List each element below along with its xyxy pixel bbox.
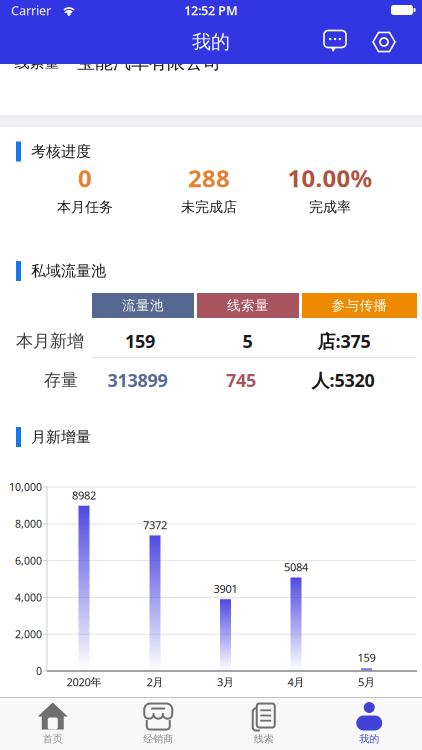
staticText: 3901 bbox=[213, 581, 237, 596]
staticText: 我的 bbox=[359, 733, 379, 745]
staticText: 12:52 PM bbox=[184, 2, 238, 19]
staticText: 未完成店 bbox=[181, 198, 237, 216]
staticText: 159 bbox=[357, 650, 375, 665]
staticText: 本月任务 bbox=[57, 198, 113, 216]
staticText: 我的 bbox=[192, 30, 230, 54]
staticText: 288 bbox=[188, 162, 230, 194]
staticText: 线索量 bbox=[227, 297, 269, 314]
button[interactable]: 线索 bbox=[212, 697, 316, 749]
staticText: 本月新增 bbox=[16, 330, 84, 352]
staticText: 完成率 bbox=[309, 198, 351, 216]
staticText: 0 bbox=[36, 664, 42, 678]
staticText: 8,000 bbox=[15, 517, 42, 531]
staticText: 3月 bbox=[217, 674, 234, 689]
staticText: 8982 bbox=[72, 488, 96, 503]
staticText: 2月 bbox=[146, 674, 163, 689]
staticText: 6,000 bbox=[15, 553, 42, 568]
staticText: 159 bbox=[125, 329, 155, 353]
button[interactable]: 流量池 bbox=[92, 293, 194, 318]
staticText: 存量 bbox=[44, 369, 78, 391]
button[interactable]: 线索量 bbox=[197, 293, 299, 318]
staticText: 月新增量 bbox=[31, 428, 91, 446]
staticText: 人:5320 bbox=[311, 368, 374, 392]
staticText: Carrier bbox=[11, 2, 51, 19]
staticText: 10.00% bbox=[287, 162, 372, 194]
staticText: 参与传播 bbox=[331, 297, 387, 314]
button[interactable]: 我的 bbox=[317, 697, 421, 749]
button[interactable]: 经销商 bbox=[106, 697, 210, 749]
staticText: 2,000 bbox=[15, 627, 42, 641]
staticText: 10,000 bbox=[9, 480, 42, 494]
staticText: 宝能汽车有限公司 bbox=[77, 51, 221, 74]
button[interactable]: 首页 bbox=[1, 697, 105, 749]
staticText: 2020年 bbox=[66, 674, 101, 689]
staticText: 私域流量池 bbox=[31, 262, 106, 280]
staticText: 流量池 bbox=[122, 297, 164, 314]
button[interactable]: 参与传播 bbox=[302, 293, 417, 318]
staticText: 7372 bbox=[143, 517, 167, 532]
staticText: 5 bbox=[242, 329, 252, 353]
staticText: 745 bbox=[226, 368, 256, 392]
button[interactable]: Messages bbox=[320, 27, 350, 57]
staticText: 经销商 bbox=[143, 733, 173, 745]
staticText: 5084 bbox=[284, 559, 308, 574]
staticText: 4,000 bbox=[15, 590, 42, 604]
button[interactable]: Settings bbox=[369, 27, 399, 57]
staticText: 5月 bbox=[358, 674, 375, 689]
staticText: 313899 bbox=[107, 368, 167, 392]
staticText: 线索 bbox=[254, 733, 274, 745]
staticText: 4月 bbox=[287, 674, 304, 689]
staticText: 店:375 bbox=[317, 329, 370, 353]
staticText: 线索量 bbox=[14, 53, 59, 72]
staticText: 首页 bbox=[43, 733, 63, 745]
staticText: 0 bbox=[78, 162, 92, 194]
staticText: 考核进度 bbox=[31, 142, 91, 161]
